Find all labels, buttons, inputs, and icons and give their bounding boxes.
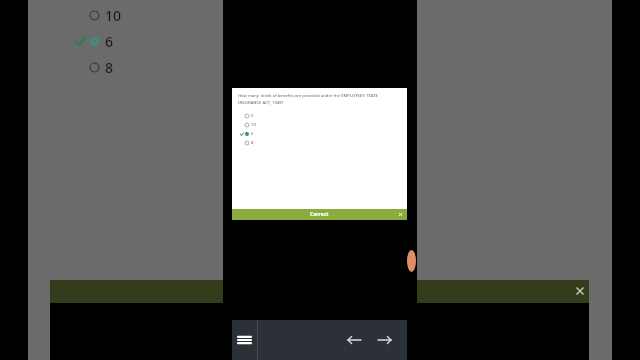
- button[interactable]: Menu: [232, 320, 257, 360]
- staticText: 6: [105, 32, 114, 50]
- button[interactable]: 5: [238, 111, 401, 120]
- staticText: Correct: [310, 211, 329, 218]
- button[interactable]: Forward: [373, 329, 395, 351]
- staticText: 5: [251, 113, 254, 119]
- button[interactable]: 8: [238, 138, 401, 147]
- button[interactable]: Close: [397, 211, 404, 218]
- button[interactable]: Correct: [232, 209, 407, 220]
- staticText: 10: [105, 6, 122, 24]
- staticText: How many kinds of benefits are provided …: [238, 93, 401, 105]
- button[interactable]: 6: [72, 32, 142, 50]
- button[interactable]: 10: [238, 120, 401, 129]
- button[interactable]: Back: [343, 329, 365, 351]
- button[interactable]: Close: [573, 284, 587, 298]
- staticText: 10: [251, 122, 256, 128]
- staticText: 6: [251, 131, 254, 137]
- button[interactable]: 10: [72, 6, 142, 24]
- staticText: 8: [105, 58, 114, 76]
- button[interactable]: 6: [238, 129, 401, 138]
- button[interactable]: 8: [72, 58, 142, 76]
- staticText: 8: [251, 140, 254, 146]
